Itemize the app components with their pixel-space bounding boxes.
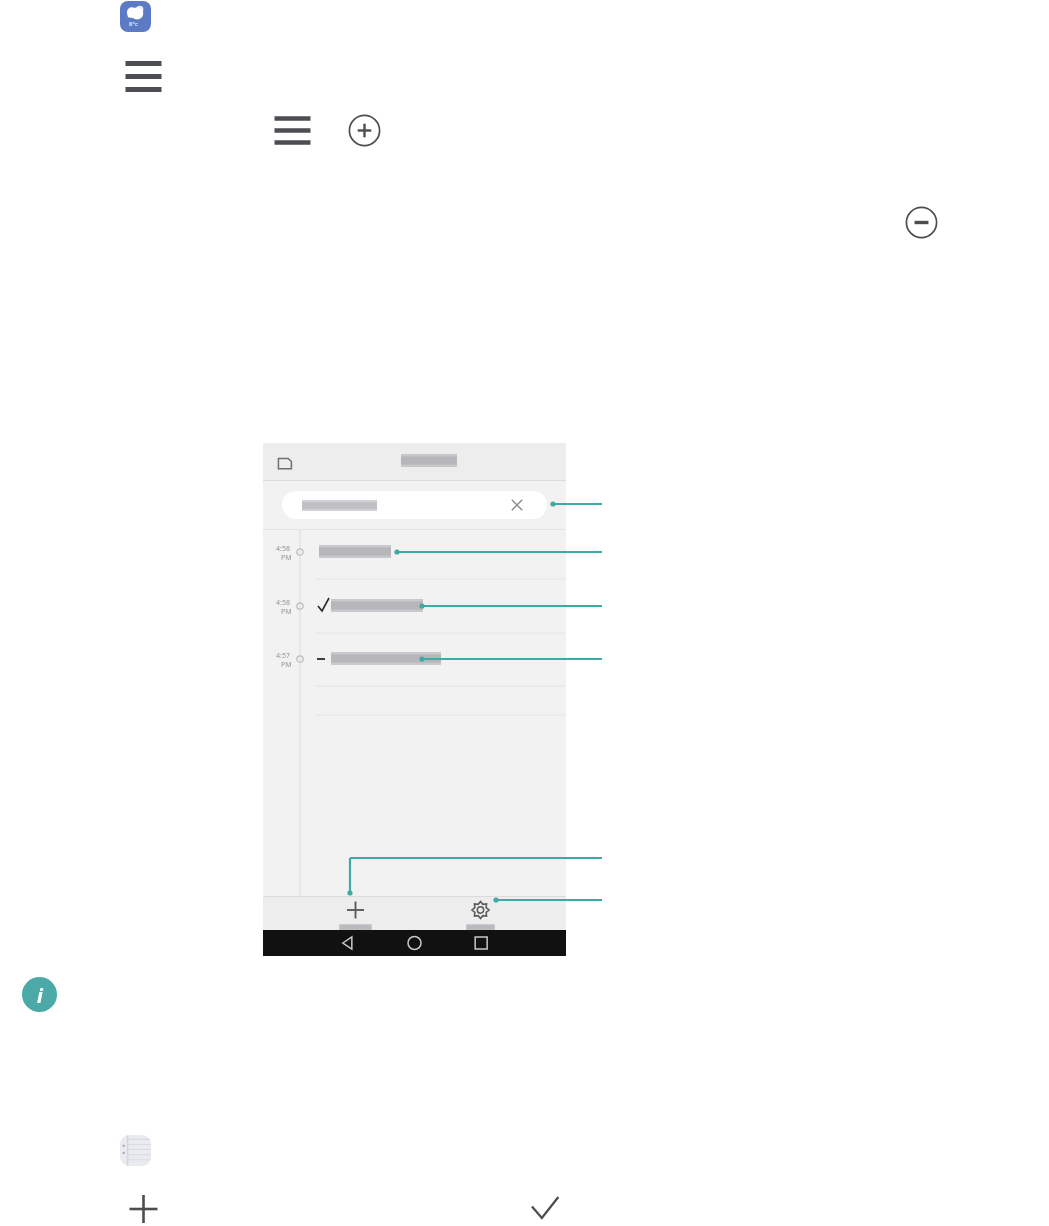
- staticText: 4:58: [276, 544, 290, 554]
- button[interactable]: Remove: [905, 206, 938, 239]
- button[interactable]: Add: [348, 114, 381, 147]
- button[interactable]: New note: [323, 898, 388, 928]
- staticText: i: [37, 983, 43, 1009]
- button[interactable]: Settings: [448, 898, 513, 928]
- button[interactable]: Done: [528, 1194, 561, 1224]
- button[interactable]: Notepad: [120, 1135, 151, 1166]
- button[interactable]: Information: [22, 977, 57, 1012]
- button[interactable]: Weather widget: [120, 1, 151, 32]
- staticText: PM: [281, 553, 292, 563]
- staticText: PM: [281, 607, 292, 617]
- staticText: 8°c: [129, 20, 138, 28]
- button[interactable]: Add: [128, 1194, 159, 1224]
- staticText: 4:58: [276, 598, 290, 608]
- button[interactable]: New folder: [277, 454, 295, 472]
- staticText: 4:57: [276, 651, 290, 661]
- button[interactable]: [282, 491, 547, 519]
- staticText: PM: [281, 660, 292, 670]
- button[interactable]: Menu: [128, 62, 159, 91]
- button[interactable]: Menu: [277, 116, 308, 145]
